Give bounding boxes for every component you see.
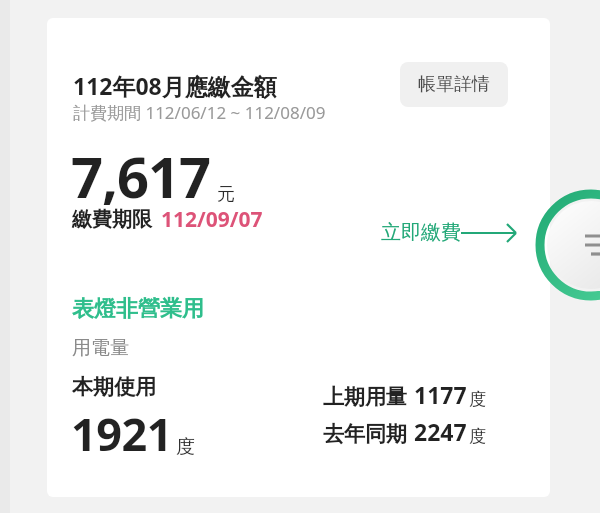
staticText: 去年同期 <box>323 421 407 447</box>
staticText: 112年08月應繳金額 <box>73 70 277 101</box>
staticText: 用電量 <box>72 336 129 360</box>
button[interactable]: 帳單詳情 <box>400 62 508 107</box>
staticText: 立即繳費 <box>381 220 461 245</box>
staticText: 計費期間 112/06/12 ~ 112/08/09 <box>73 101 326 124</box>
staticText: 上期用量 <box>323 384 407 410</box>
staticText: 表燈非營業用 <box>72 295 204 323</box>
staticText: 元 <box>217 183 235 206</box>
staticText: 度 <box>469 426 486 447</box>
staticText: 度 <box>176 435 195 459</box>
staticText: 本期使用 <box>72 374 156 400</box>
staticText: 7,617 <box>71 138 211 214</box>
staticText: 2247 <box>414 416 467 447</box>
button[interactable]: 立即繳費 <box>377 214 521 251</box>
staticText: 1177 <box>414 379 467 410</box>
staticText: 度 <box>469 389 486 410</box>
staticText: 帳單詳情 <box>418 73 490 96</box>
staticText: 112/09/07 <box>161 205 263 234</box>
staticText: 1921 <box>71 403 172 464</box>
staticText: 繳費期限 <box>72 207 152 232</box>
button[interactable]: Menu <box>536 190 600 300</box>
